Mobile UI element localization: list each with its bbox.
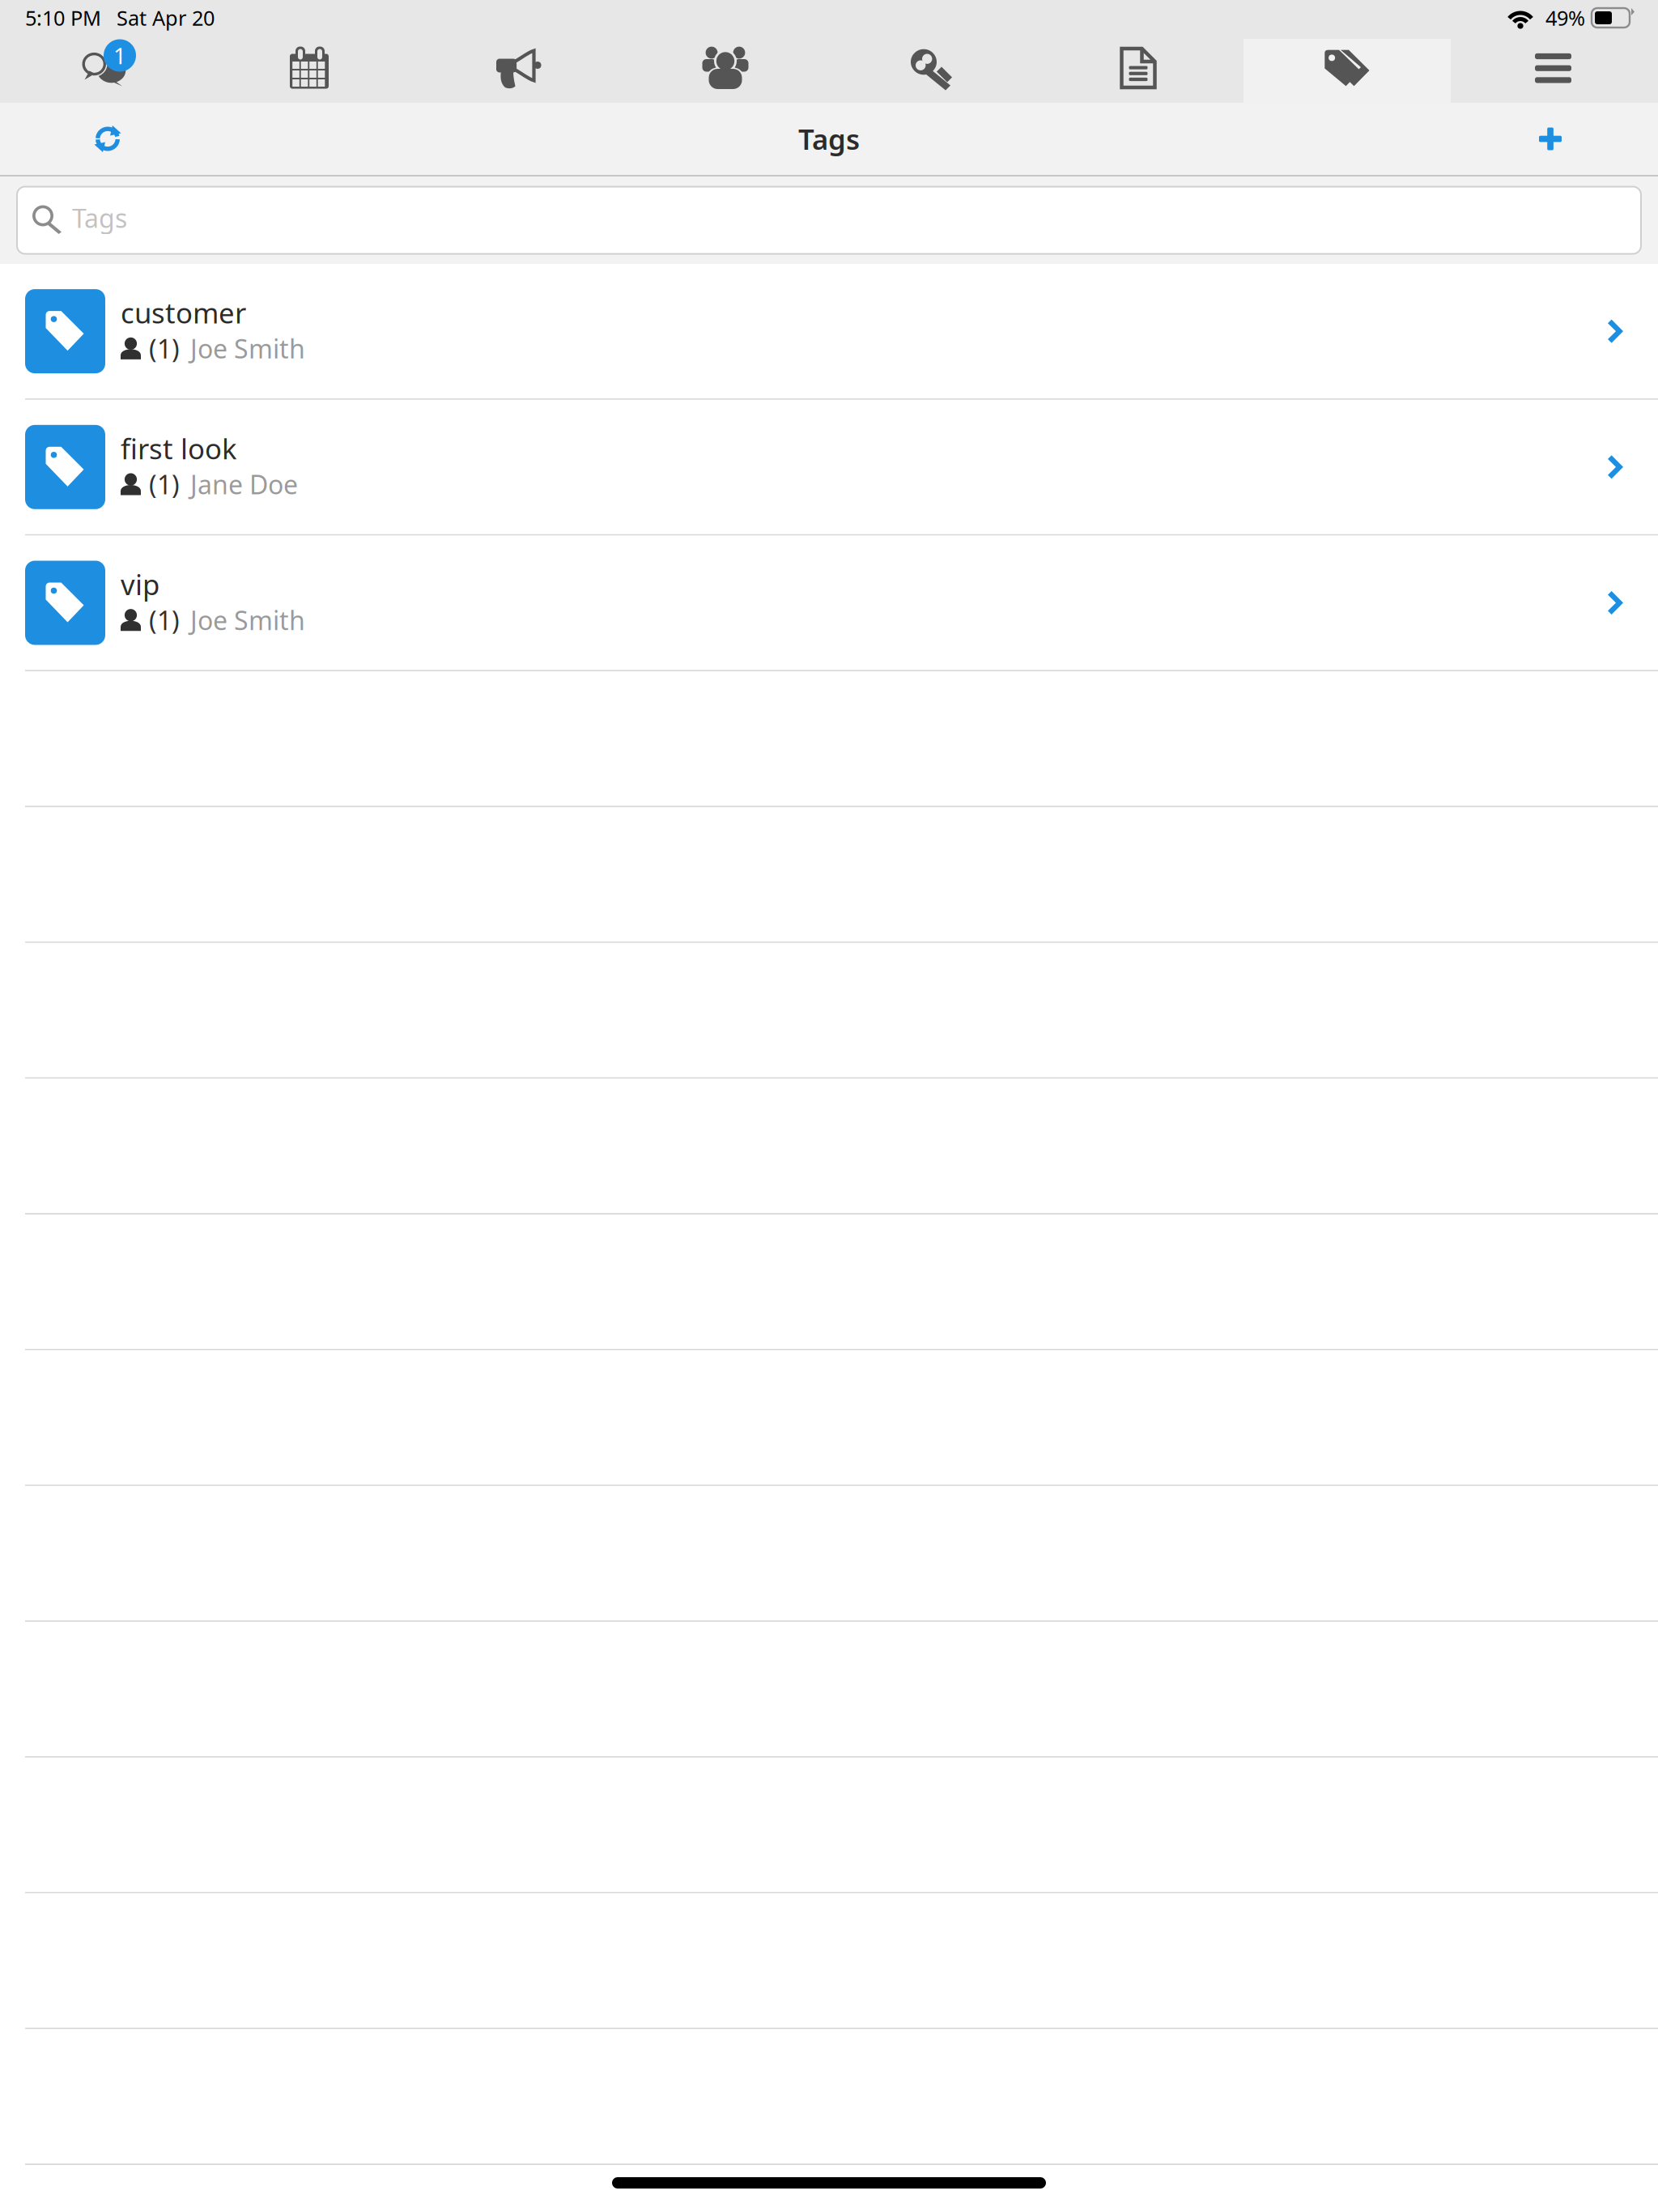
staticText: Tags <box>72 201 127 235</box>
staticText: Jane Doe <box>190 467 298 501</box>
button[interactable]: Tags <box>1243 39 1451 103</box>
button[interactable]: Messages <box>0 39 207 103</box>
staticText: Tags <box>798 120 860 157</box>
button[interactable]: customer <box>0 264 1658 398</box>
staticText: (1) <box>149 331 180 366</box>
staticText: customer <box>121 294 246 331</box>
staticText: first look <box>121 430 237 467</box>
staticText: 5:10 PM <box>25 4 101 31</box>
button[interactable]: Documents <box>1036 39 1243 103</box>
staticText: Joe Smith <box>190 331 305 366</box>
button[interactable]: vip <box>0 536 1658 670</box>
button[interactable]: More <box>1451 39 1658 103</box>
staticText: (1) <box>149 603 180 637</box>
staticText: vip <box>121 566 159 603</box>
button[interactable]: Add tag <box>1506 103 1595 175</box>
button[interactable]: Passwords <box>829 39 1036 103</box>
button[interactable]: first look <box>0 400 1658 534</box>
staticText: Sat Apr 20 <box>117 4 215 31</box>
staticText: 1 <box>113 40 126 71</box>
staticText: 49% <box>1545 4 1585 31</box>
button[interactable]: Announcements <box>414 39 622 103</box>
button[interactable]: Contacts <box>622 39 829 103</box>
button[interactable]: Search tags <box>0 187 1658 254</box>
staticText: Joe Smith <box>190 603 305 637</box>
button[interactable]: Refresh <box>63 103 152 175</box>
button[interactable]: Calendar <box>207 39 414 103</box>
staticText: (1) <box>149 467 180 501</box>
